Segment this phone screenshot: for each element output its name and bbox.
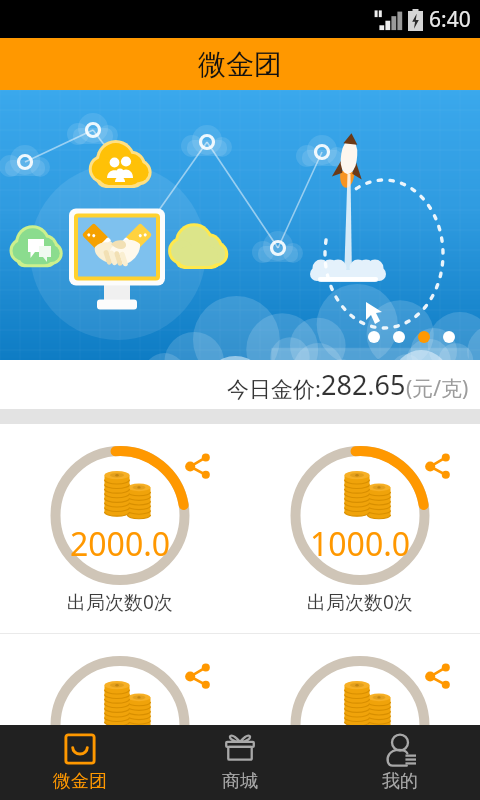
staticText: 出局次数0次: [67, 589, 173, 615]
button[interactable]: [0, 90, 480, 360]
staticText: (元/克): [406, 374, 469, 403]
button[interactable]: 分享: [240, 634, 480, 725]
button[interactable]: 商城: [160, 725, 320, 793]
staticText: 1000.0: [310, 522, 411, 566]
staticText: 6:40: [429, 5, 471, 34]
button[interactable]: 分享: [425, 453, 451, 479]
staticText: 微金团: [53, 770, 107, 793]
button[interactable]: 分享: [185, 453, 211, 479]
button[interactable]: 分享: [0, 424, 240, 633]
button[interactable]: 分享: [185, 663, 211, 689]
staticText: 出局次数0次: [307, 589, 413, 615]
staticText: 282.65: [321, 366, 406, 403]
button[interactable]: 分享: [425, 663, 451, 689]
staticText: 微金团: [198, 47, 282, 82]
staticText: 商城: [222, 770, 258, 793]
button[interactable]: 分享: [240, 424, 480, 633]
staticText: 今日金价:: [227, 373, 321, 403]
button[interactable]: 我的: [320, 725, 480, 793]
staticText: 我的: [382, 770, 418, 793]
button[interactable]: 分享: [0, 634, 240, 725]
staticText: 2000.0: [70, 522, 171, 566]
button[interactable]: 微金团: [0, 725, 160, 793]
